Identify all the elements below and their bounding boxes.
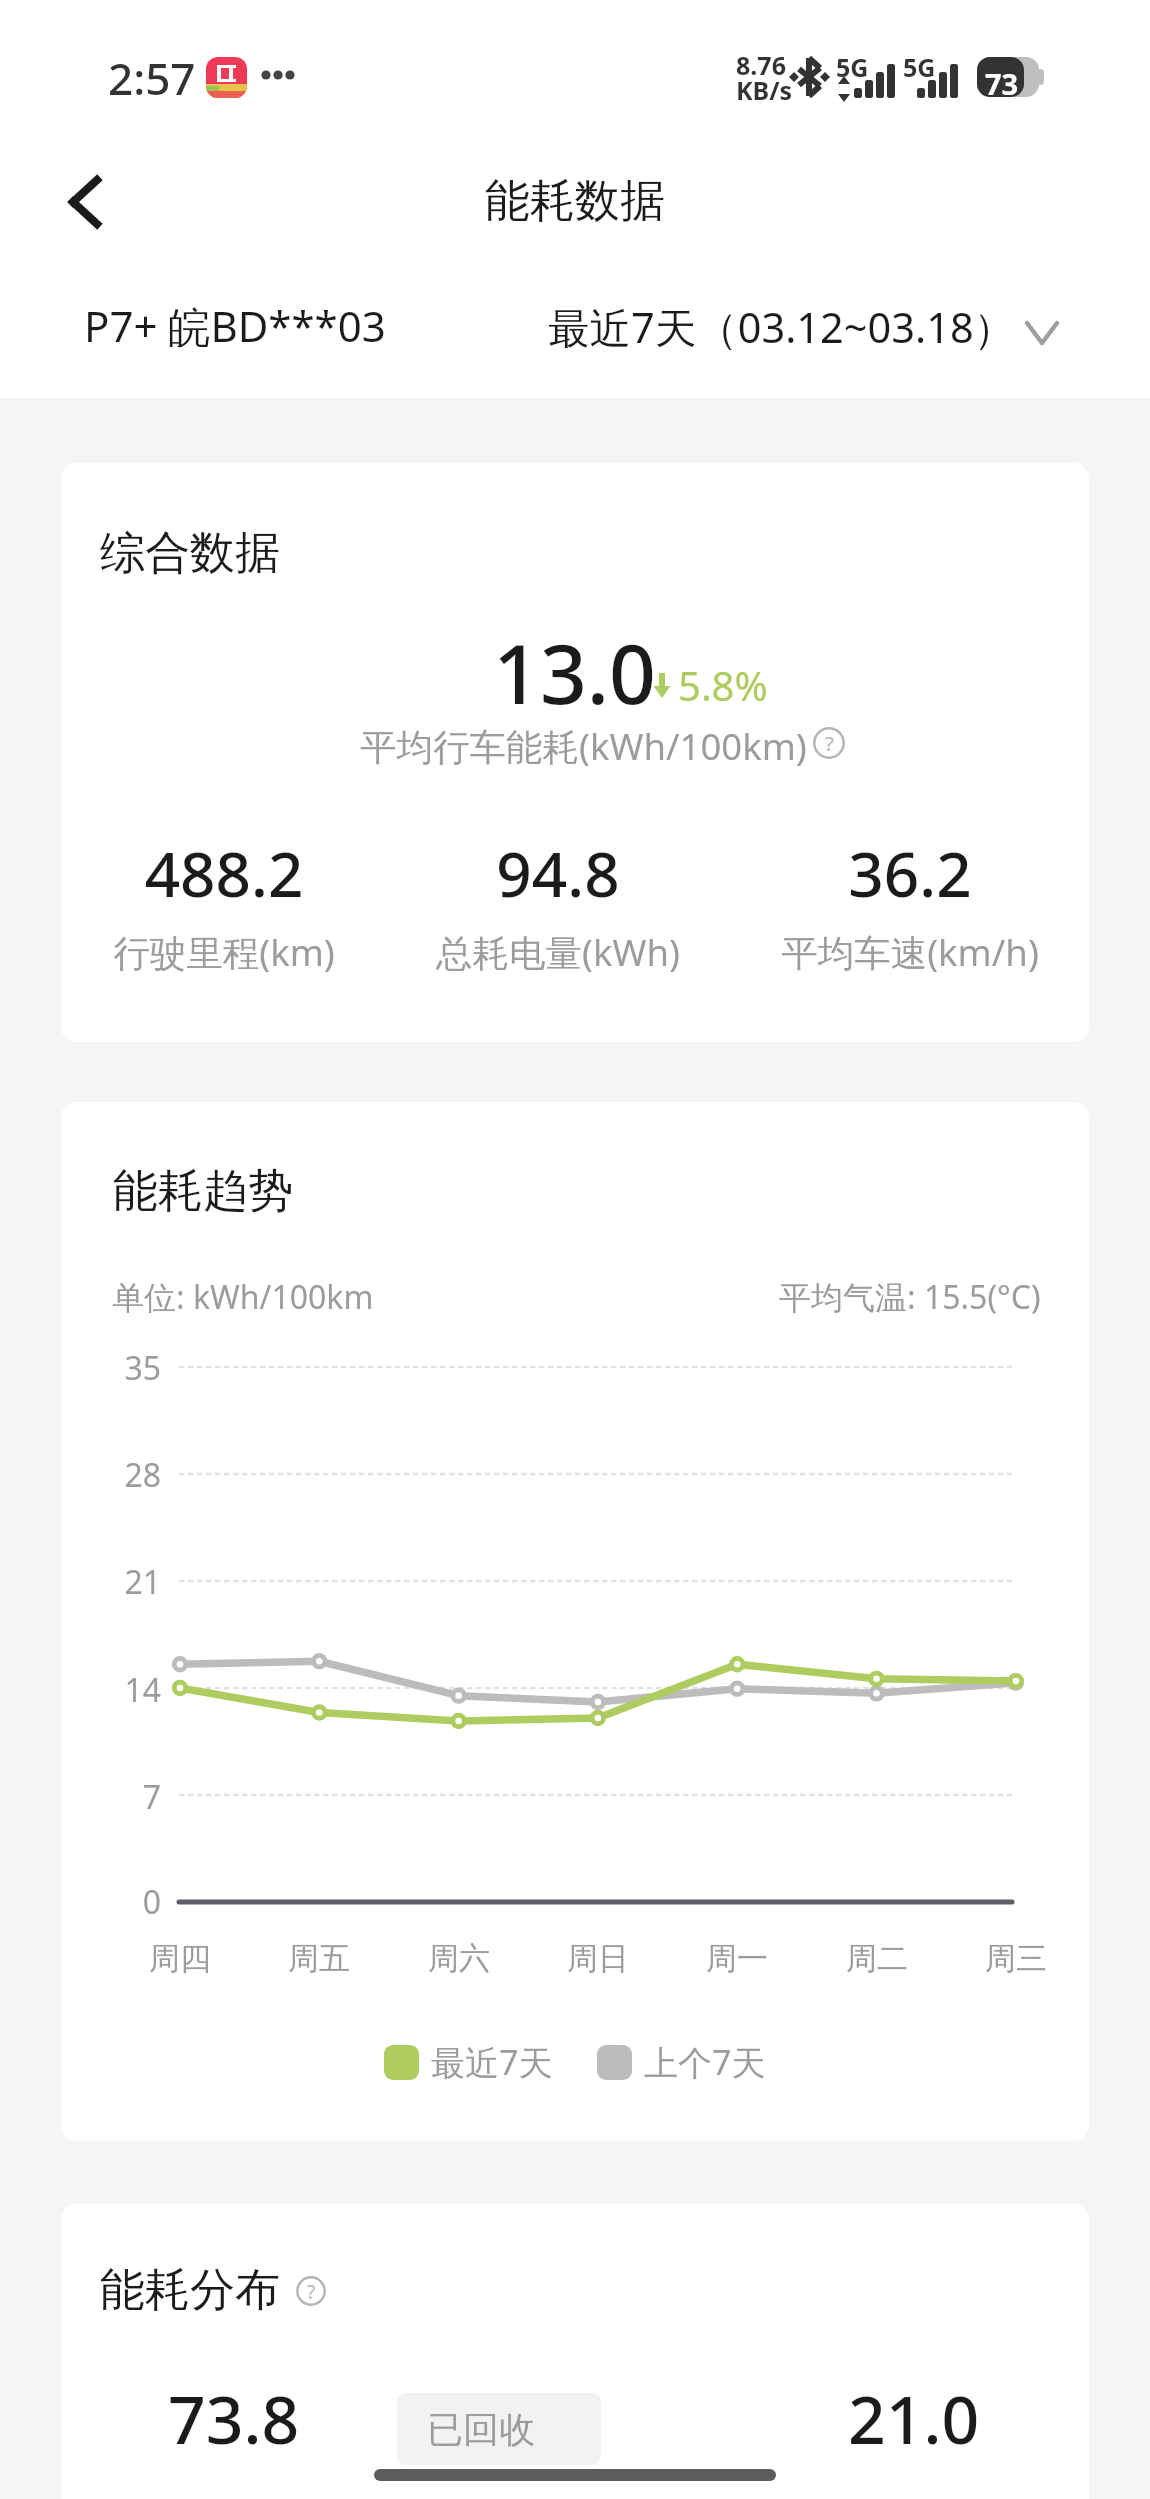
staticText: 28 <box>101 1453 161 1497</box>
staticText: 7 <box>101 1775 161 1819</box>
staticText: 周三 <box>956 1939 1076 1978</box>
staticText: 14 <box>101 1668 161 1712</box>
staticText: 2:57 <box>108 48 196 108</box>
button[interactable]: Back <box>34 156 126 248</box>
staticText: 平均气温: 15.5(°C) <box>779 1275 1041 1319</box>
staticText: 周五 <box>259 1939 379 1978</box>
button[interactable]: Help <box>296 2276 326 2306</box>
staticText: 能耗分布 <box>100 2262 280 2319</box>
button[interactable]: 最近7天（03.12~03.18） <box>548 299 1068 356</box>
staticText: 73.8 <box>168 2373 300 2463</box>
staticText: 能耗数据 <box>485 173 665 230</box>
staticText: 5G <box>836 50 869 84</box>
staticText: 最近7天 <box>431 2039 553 2085</box>
staticText: 0 <box>101 1880 161 1924</box>
button[interactable]: Help <box>813 727 845 759</box>
staticText: 平均行车能耗(kWh/100km) <box>360 721 807 771</box>
staticText: ? <box>307 2278 316 2304</box>
staticText: 5.8% <box>678 658 768 712</box>
staticText: 周六 <box>399 1939 519 1978</box>
staticText: 35 <box>101 1346 161 1390</box>
staticText: 488.2 <box>61 831 424 915</box>
staticText: 8.76 <box>736 48 786 82</box>
staticText: 能耗趋势 <box>113 1163 293 1220</box>
staticText: 36.2 <box>710 831 1089 915</box>
staticText: 平均车速(km/h) <box>710 927 1089 977</box>
staticText: 周日 <box>538 1939 658 1978</box>
staticText: 21.0 <box>848 2373 980 2463</box>
staticText: 单位: kWh/100km <box>112 1275 374 1319</box>
staticText: KB/s <box>736 73 793 107</box>
staticText: 周二 <box>817 1939 937 1978</box>
staticText: 综合数据 <box>100 525 280 582</box>
staticText: 73 <box>985 64 1019 103</box>
staticText: 21 <box>101 1560 161 1604</box>
button[interactable]: 已回收 <box>397 2393 601 2465</box>
staticText: 94.8 <box>358 831 758 915</box>
staticText: 总耗电量(kWh) <box>358 927 758 977</box>
staticText: 周四 <box>120 1939 240 1978</box>
staticText: 5G <box>903 50 936 84</box>
button[interactable]: P7+ 皖BD***03 <box>84 297 386 354</box>
staticText: 已回收 <box>427 2407 535 2452</box>
staticText: 周一 <box>677 1939 797 1978</box>
staticText: 最近7天（03.12~03.18） <box>548 299 1016 356</box>
staticText: ? <box>825 729 834 757</box>
button[interactable]: 上个7天 <box>597 2039 766 2085</box>
staticText: 13.0 <box>493 616 657 728</box>
button[interactable]: 最近7天 <box>384 2039 553 2085</box>
staticText: 行驶里程(km) <box>61 927 424 977</box>
staticText: 上个7天 <box>644 2039 766 2085</box>
